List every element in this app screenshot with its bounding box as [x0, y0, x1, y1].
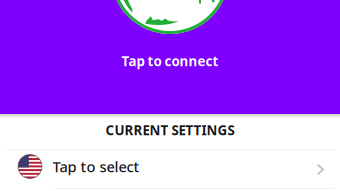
staticText: CURRENT SETTINGS: [105, 121, 234, 139]
staticText: Tap to select: [52, 157, 139, 176]
button[interactable]: Tap to connect: [0, 50, 340, 72]
button[interactable]: Tap to select: [0, 147, 340, 186]
staticText: Tap to connect: [121, 52, 218, 70]
